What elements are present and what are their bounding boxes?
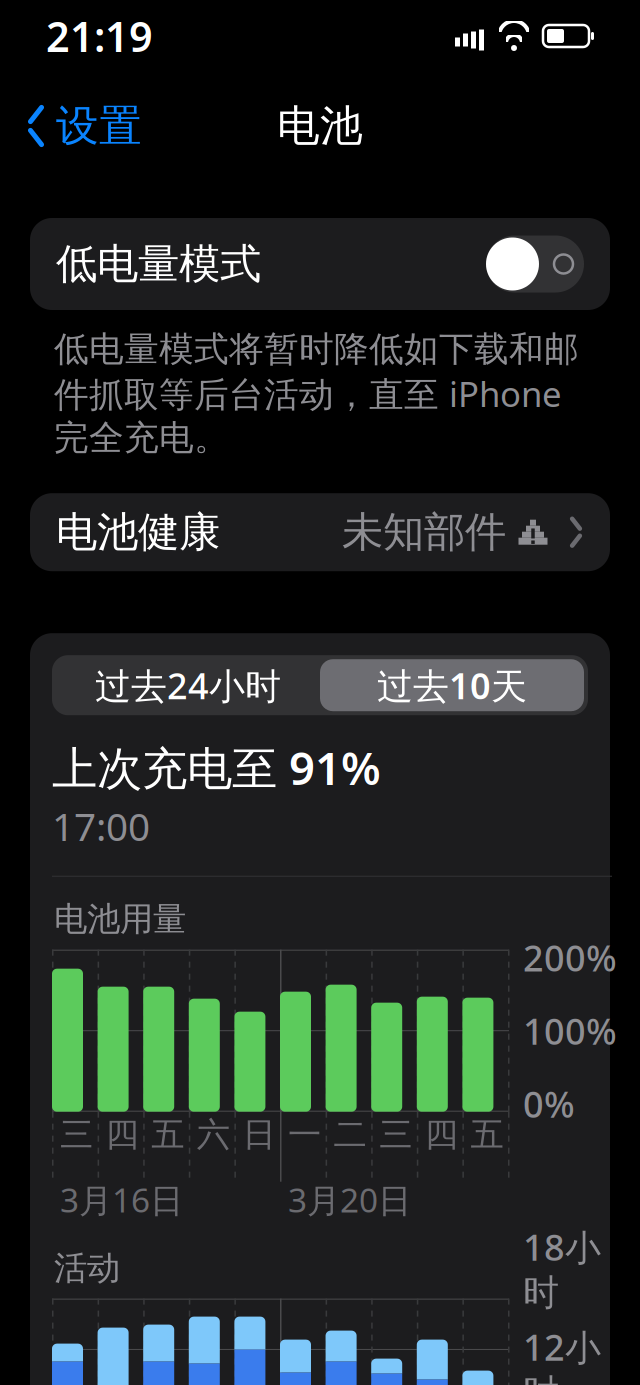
staticText: 活动	[54, 1248, 120, 1289]
staticText: 日	[242, 1114, 275, 1155]
staticText: 3月16日	[60, 1178, 183, 1222]
staticText: 100%	[523, 1007, 617, 1055]
button[interactable]: 低电量模式	[30, 218, 610, 310]
staticText: 电池	[277, 100, 363, 152]
staticText: 一	[288, 1114, 321, 1155]
staticText: 五	[151, 1114, 184, 1155]
staticText: 四	[106, 1114, 139, 1155]
staticText: 电池用量	[54, 899, 186, 940]
staticText: 3月20日	[288, 1178, 411, 1222]
staticText: 过去10天	[377, 661, 527, 709]
staticText: 过去24小时	[95, 661, 281, 709]
staticText: 三	[379, 1114, 412, 1155]
staticText: 17:00	[52, 800, 150, 852]
staticText: 三	[60, 1114, 93, 1155]
staticText: 设置	[56, 100, 142, 152]
staticText: 21:19	[46, 9, 153, 63]
staticText: 12小时	[523, 1323, 601, 1385]
staticText: 四	[425, 1114, 458, 1155]
staticText: 18小时	[523, 1223, 601, 1315]
staticText: 未知部件	[342, 507, 506, 558]
button[interactable]: 设置	[20, 92, 148, 160]
staticText: 0%	[523, 1080, 575, 1128]
staticText: 低电量模式将暂时降低如下载和邮件抓取等后台活动，直至 iPhone 完全充电。	[54, 328, 579, 459]
button[interactable]: 电池健康	[30, 493, 610, 571]
staticText: 二	[334, 1114, 367, 1155]
staticText: 五	[470, 1114, 503, 1155]
staticText: 电池健康	[56, 507, 220, 558]
staticText: 六	[197, 1114, 230, 1155]
staticText: 200%	[523, 934, 617, 981]
button[interactable]: 过去24小时	[56, 659, 320, 711]
staticText: 上次充电至 91%	[52, 737, 381, 797]
staticText: 低电量模式	[56, 239, 261, 289]
button[interactable]: 过去10天	[320, 659, 584, 711]
